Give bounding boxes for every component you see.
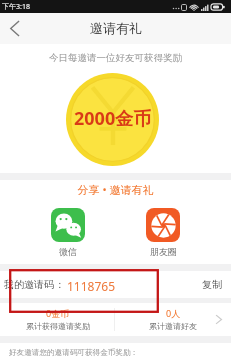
button[interactable]: 0金币 [0, 303, 115, 336]
staticText: 分享 • 邀请有礼 [0, 182, 231, 197]
staticText: 朋友圈 [150, 246, 177, 257]
button[interactable]: 0人 [115, 303, 231, 336]
staticText: 累计获得邀请奖励 [26, 321, 90, 331]
button[interactable]: WeChat [51, 208, 85, 257]
staticText: 今日每邀请一位好友可获得奖励 [0, 52, 231, 64]
staticText: 1118765 [67, 278, 116, 294]
staticText: 2000金币 [74, 106, 152, 131]
staticText: 邀请有礼 [90, 20, 142, 36]
staticText: 好友邀请您的邀请码可获得金币奖励： [9, 348, 139, 358]
other: WeChat [51, 208, 85, 242]
other: Moments [146, 208, 180, 242]
button[interactable]: Moments [146, 208, 180, 257]
staticText: 微信 [59, 246, 77, 257]
button[interactable]: Back [0, 13, 28, 44]
button[interactable]: 我的邀请码 [0, 271, 231, 298]
staticText: 0人 [166, 307, 181, 319]
staticText: 累计邀请好友 [149, 321, 197, 331]
staticText: 复制 [202, 278, 222, 291]
staticText: 0金币 [46, 307, 70, 319]
staticText: ： [55, 278, 65, 291]
staticText: 下午3:18 [2, 2, 30, 12]
staticText: 我的邀请码 [4, 278, 54, 291]
